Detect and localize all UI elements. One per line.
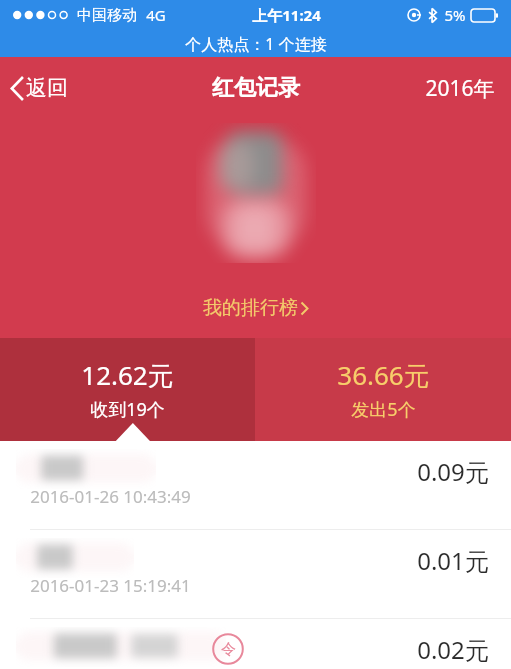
staticText: 收到19个 — [90, 397, 165, 422]
staticText: 中国移动 — [77, 6, 137, 25]
staticText: 0.09元 — [417, 455, 489, 488]
staticText: 2016年 — [425, 74, 495, 103]
button[interactable]: 我的排行榜 — [193, 292, 319, 324]
staticText: 12.62元 — [81, 357, 174, 393]
button[interactable]: 2016年 — [409, 66, 511, 111]
button[interactable]: 2016-01-23 15:19:41 — [0, 530, 511, 618]
staticText: 发出5个 — [351, 397, 416, 422]
staticText: 5% — [444, 5, 466, 25]
staticText: 返回 — [26, 75, 68, 101]
staticText: 令 — [221, 640, 236, 659]
button[interactable]: 2016-01-26 10:43:49 — [0, 441, 511, 529]
staticText: 4G — [146, 5, 166, 25]
staticText: 0.01元 — [417, 544, 489, 577]
button[interactable]: 返回 — [0, 67, 82, 109]
staticText: 红包记录 — [212, 74, 300, 102]
staticText: 个人热点：1 个连接 — [185, 33, 327, 55]
staticText: 2016-01-23 15:19:41 — [30, 574, 191, 597]
button[interactable]: 令 — [0, 619, 511, 669]
staticText: 36.66元 — [337, 357, 430, 393]
staticText: 0.02元 — [417, 633, 489, 666]
staticText: 2016-01-26 10:43:49 — [30, 485, 191, 508]
staticText: 我的排行榜 — [203, 296, 298, 320]
button[interactable]: 12.62元 — [0, 338, 255, 441]
staticText: 上午11:24 — [252, 5, 321, 25]
button[interactable]: 36.66元 — [255, 338, 511, 441]
